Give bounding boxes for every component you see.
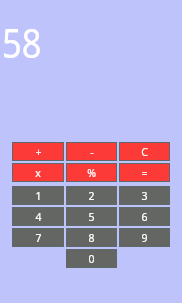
- button[interactable]: percent: [66, 163, 117, 182]
- staticText: 1: [35, 189, 42, 203]
- button[interactable]: plus: [12, 142, 64, 161]
- button[interactable]: 3: [119, 186, 170, 205]
- button[interactable]: 4: [12, 207, 64, 226]
- staticText: 3: [141, 189, 148, 203]
- button[interactable]: 5: [66, 207, 117, 226]
- staticText: 4: [35, 210, 42, 224]
- staticText: %: [87, 166, 96, 180]
- staticText: 8: [88, 231, 95, 245]
- staticText: x: [35, 166, 41, 180]
- staticText: C: [141, 145, 148, 159]
- button[interactable]: 1: [12, 186, 64, 205]
- button[interactable]: clear: [119, 142, 170, 161]
- button[interactable]: 8: [66, 228, 117, 247]
- button[interactable]: 0: [66, 249, 117, 268]
- button[interactable]: 9: [119, 228, 170, 247]
- button[interactable]: 2: [66, 186, 117, 205]
- staticText: 0: [88, 252, 95, 266]
- staticText: +: [35, 145, 42, 159]
- staticText: 58: [2, 15, 42, 69]
- staticText: 2: [88, 189, 95, 203]
- staticText: 6: [141, 210, 148, 224]
- staticText: -: [90, 145, 94, 159]
- button[interactable]: multiply: [12, 163, 64, 182]
- button[interactable]: 7: [12, 228, 64, 247]
- button[interactable]: equals: [119, 163, 170, 182]
- staticText: 9: [141, 231, 148, 245]
- staticText: 7: [35, 231, 42, 245]
- button[interactable]: minus: [66, 142, 117, 161]
- button[interactable]: 6: [119, 207, 170, 226]
- staticText: =: [141, 166, 148, 180]
- staticText: 5: [88, 210, 95, 224]
